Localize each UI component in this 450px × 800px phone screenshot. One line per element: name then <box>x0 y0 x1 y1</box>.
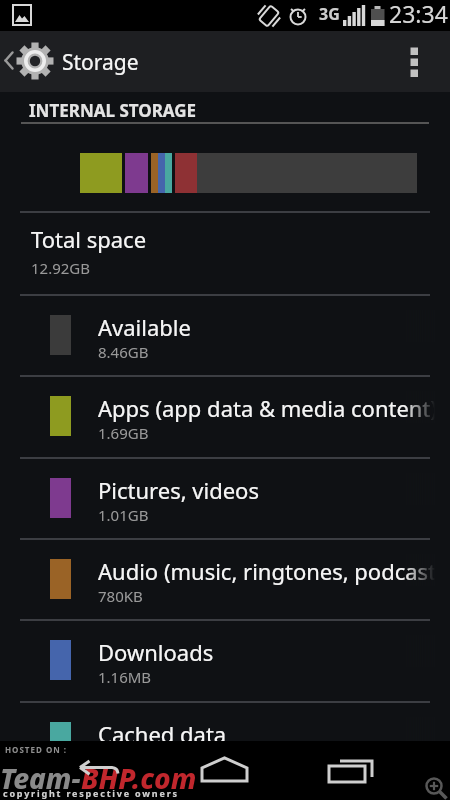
staticText: 1.16MB <box>98 667 152 687</box>
staticText: 12.92GB <box>31 258 91 278</box>
staticText: BHP.com <box>81 759 197 797</box>
button[interactable]: Cached data <box>0 701 450 782</box>
staticText: 8.46GB <box>98 342 149 362</box>
staticText: 23:34 <box>389 0 448 29</box>
staticText: Total space <box>31 224 147 254</box>
button[interactable]: Apps (app data & media content) <box>0 375 450 456</box>
staticText: Team- <box>0 759 81 797</box>
staticText: 3G <box>319 3 340 25</box>
staticText: Audio (music, ringtones, podcasts) <box>98 556 435 586</box>
staticText: Pictures, videos <box>98 475 259 505</box>
staticText: Available <box>98 312 191 342</box>
button[interactable]: Pictures, videos <box>0 457 450 538</box>
staticText: 1.69GB <box>98 423 149 443</box>
staticText: 32.00KB <box>98 749 156 769</box>
button[interactable] <box>55 741 168 800</box>
staticText: HOSTED ON : <box>5 744 68 755</box>
staticText: copyright respective owners <box>3 787 179 799</box>
staticText: Storage <box>62 48 139 77</box>
button[interactable] <box>396 31 450 92</box>
staticText: INTERNAL STORAGE <box>29 99 197 122</box>
button[interactable] <box>420 772 450 800</box>
staticText: 780KB <box>98 586 143 606</box>
button[interactable]: Downloads <box>0 619 450 700</box>
button[interactable] <box>168 741 281 800</box>
staticText: Downloads <box>98 637 214 667</box>
button[interactable]: Available <box>0 294 450 375</box>
staticText: Apps (app data & media content) <box>98 393 435 423</box>
button[interactable] <box>0 31 58 92</box>
button[interactable]: Total space <box>0 212 450 294</box>
button[interactable]: Audio (music, ringtones, podcasts) <box>0 538 450 619</box>
button[interactable] <box>281 741 394 800</box>
staticText: 1.01GB <box>98 505 149 525</box>
staticText: Cached data <box>98 719 227 749</box>
